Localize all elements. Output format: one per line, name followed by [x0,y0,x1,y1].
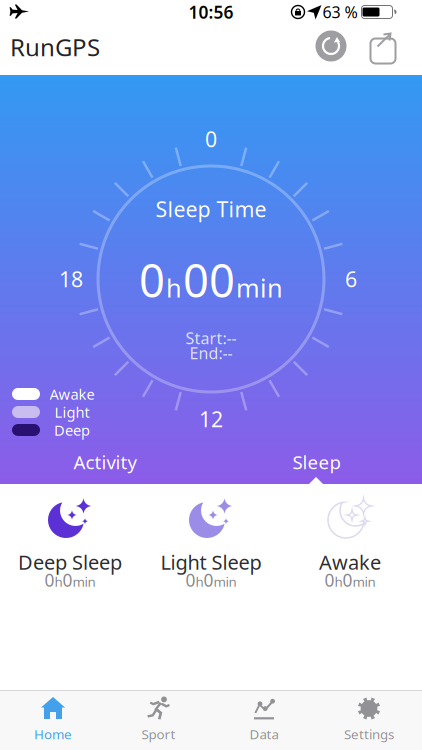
staticText: Sport [141,725,175,743]
staticText: Deep Sleep [18,549,122,575]
staticText: 0 [324,568,334,591]
staticText: 6 [345,265,357,293]
staticText: min [236,271,283,304]
button[interactable]: Sport [113,690,203,750]
staticText: min [72,573,95,590]
staticText: 0 [203,568,213,591]
button[interactable]: Refresh [315,30,346,61]
staticText: 0 [44,568,54,591]
staticText: Home [34,725,72,743]
staticText: h [54,573,62,590]
staticText: Awake [319,549,381,575]
staticText: Activity [73,450,137,474]
staticText: 63 % [322,1,357,23]
staticText: Data [249,725,278,743]
staticText: min [352,573,375,590]
staticText: Settings [344,725,394,743]
staticText: min [213,573,236,590]
staticText: Sleep Time [155,195,266,223]
staticText: 0 [342,568,352,591]
button[interactable]: Settings [324,690,414,750]
button[interactable]: Share [368,30,396,61]
staticText: 12 [199,405,223,433]
staticText: 0 [185,568,195,591]
button[interactable]: Sleep [211,447,422,477]
button[interactable]: Home [8,690,98,750]
staticText: 0 [139,250,165,310]
staticText: 18 [59,265,83,293]
staticText: h [166,271,182,304]
staticText: Light Sleep [160,549,261,575]
staticText: h [195,573,203,590]
staticText: 10:56 [188,0,233,23]
staticText: Awake [49,384,94,404]
staticText: 0 [205,125,217,153]
staticText: h [334,573,342,590]
button[interactable]: Activity [0,447,211,477]
staticText: 00 [183,250,235,310]
staticText: Light [54,402,89,422]
staticText: Start:-- [185,327,236,349]
staticText: End:-- [189,342,232,364]
staticText: 0 [62,568,72,591]
staticText: Sleep [292,450,340,474]
staticText: Deep [54,420,90,440]
button[interactable]: Data [219,690,309,750]
staticText: RunGPS [10,31,100,63]
